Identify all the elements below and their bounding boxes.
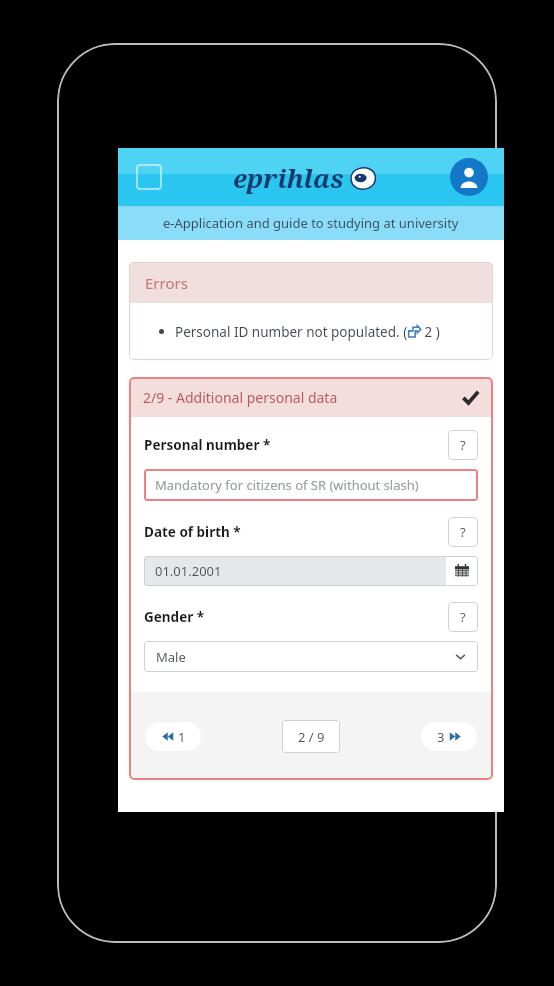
staticText: ? (460, 523, 466, 541)
staticText: 01.01.2001 (155, 562, 222, 580)
staticText: Mandatory for citizens of SR (without sl… (155, 476, 419, 494)
staticText: 1 (178, 728, 186, 746)
button[interactable]: 1 (145, 722, 201, 751)
button[interactable]: 2/9 - Additional personal data (143, 377, 479, 417)
button[interactable]: Help (448, 517, 478, 547)
button[interactable]: Pick date (446, 556, 478, 586)
button[interactable]: Male (156, 641, 466, 672)
staticText: 3 (437, 728, 445, 746)
staticText: 2/9 - Additional personal data (143, 388, 338, 407)
staticText: eprihlas (233, 160, 344, 195)
button[interactable]: Help (448, 430, 478, 460)
staticText: Personal number * (144, 436, 271, 454)
staticText: 2 / 9 (298, 728, 325, 746)
staticText: 2 ) (421, 323, 440, 341)
button[interactable]: 2 / 9 (282, 720, 340, 753)
staticText: e-Application and guide to studying at u… (163, 214, 459, 232)
button[interactable]: 3 (421, 722, 477, 751)
staticText: Male (156, 648, 186, 666)
staticText: Date of birth * (144, 523, 241, 541)
button[interactable]: Account (450, 158, 488, 196)
staticText: Errors (145, 273, 188, 293)
button[interactable]: Help (448, 602, 478, 632)
button[interactable]: eprihlas (233, 160, 378, 195)
staticText: ? (460, 436, 466, 454)
staticText: Personal ID number not populated. ( (175, 323, 408, 341)
button[interactable]: Menu (136, 164, 162, 190)
button[interactable]: Mandatory for citizens of SR (without sl… (155, 469, 478, 501)
staticText: ? (460, 608, 466, 626)
staticText: Gender * (144, 608, 205, 626)
